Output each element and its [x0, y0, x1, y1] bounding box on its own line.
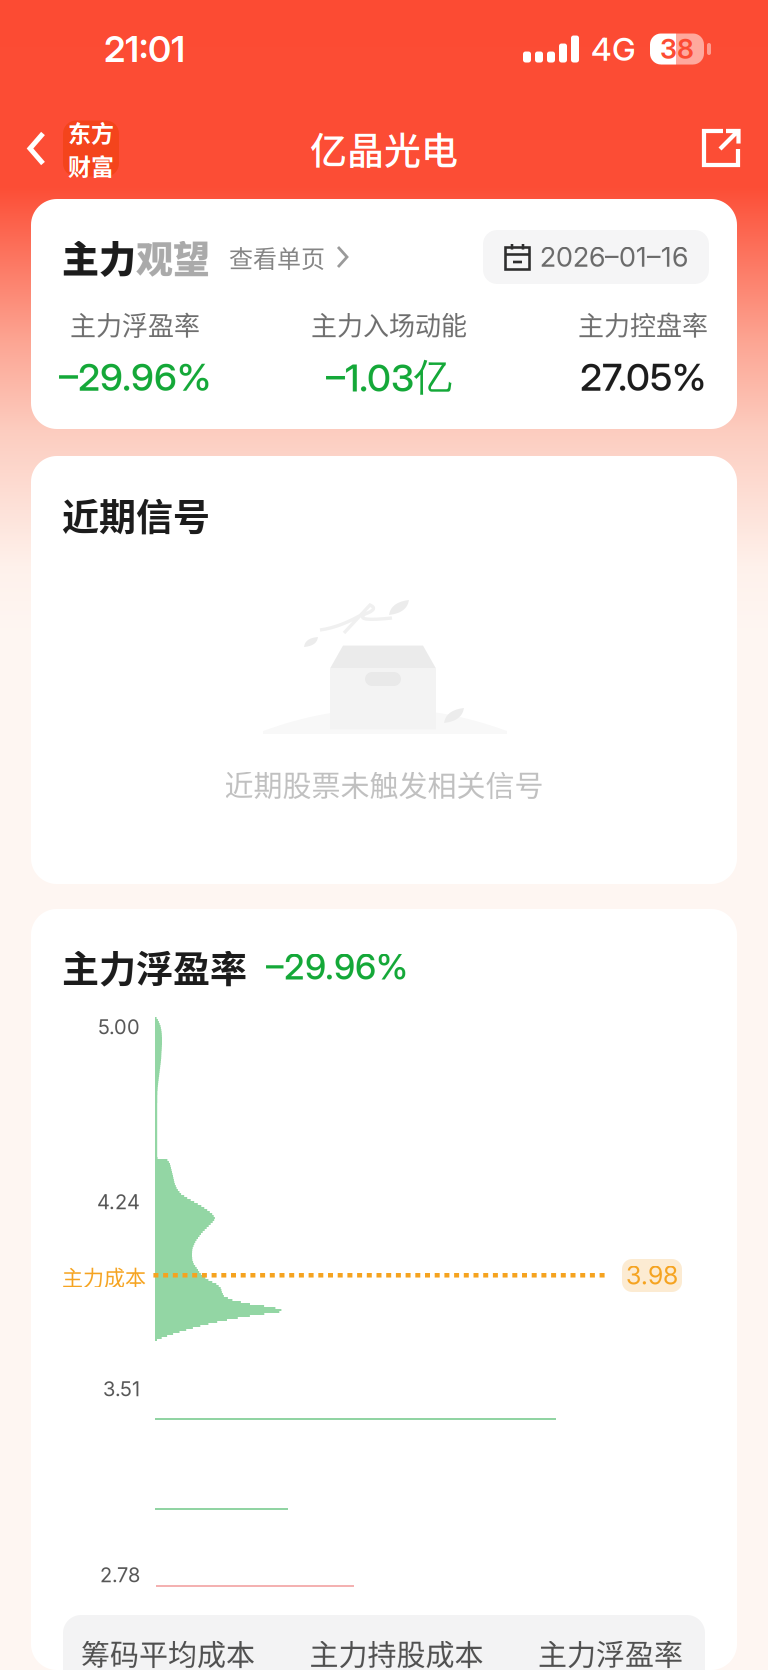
button[interactable]: 筹码平均成本 [81, 1615, 255, 1670]
staticText: 3.98 [626, 1260, 678, 1291]
staticText: 主力浮盈率 [70, 305, 200, 343]
staticText: –29.96% [266, 946, 408, 988]
staticText: –1.03亿 [326, 353, 452, 401]
staticText: 主力成本 [62, 1261, 146, 1291]
staticText: 观望 [136, 230, 210, 284]
staticText: 21:01 [104, 27, 185, 71]
button[interactable]: 返回 [0, 108, 119, 188]
staticText: 5.00 [98, 1015, 140, 1039]
button[interactable]: 分享 [701, 116, 768, 181]
staticText: 2026–01–16 [540, 241, 688, 273]
button[interactable]: 2026–01–16 [483, 230, 709, 284]
button[interactable]: 主力浮盈率 [538, 1615, 683, 1670]
staticText: 筹码平均成本 [81, 1632, 255, 1670]
staticText: 近期信号 [62, 488, 210, 542]
staticText: 主力入场动能 [311, 305, 467, 343]
staticText: 查看单页 [229, 240, 325, 274]
staticText: 38 [660, 33, 694, 65]
staticText: 财富 [68, 148, 114, 182]
staticText: 主力浮盈率 [538, 1632, 683, 1670]
staticText: 东方 [68, 115, 114, 148]
staticText: 主力 [62, 230, 136, 284]
staticText: 4G [591, 30, 636, 68]
staticText: 主力持股成本 [309, 1632, 483, 1670]
staticText: 2.78 [100, 1563, 140, 1587]
staticText: 4.24 [97, 1190, 140, 1214]
staticText: 主力控盘率 [578, 305, 708, 343]
staticText: 主力浮盈率 [62, 940, 247, 994]
button[interactable]: 主力 [62, 230, 349, 284]
staticText: –29.96% [59, 354, 211, 400]
staticText: 27.05% [580, 354, 706, 400]
staticText: 近期股票未触发相关信号 [224, 763, 543, 805]
staticText: 3.51 [103, 1377, 140, 1401]
staticText: 亿晶光电 [310, 122, 458, 175]
button[interactable]: 主力持股成本 [309, 1615, 483, 1670]
